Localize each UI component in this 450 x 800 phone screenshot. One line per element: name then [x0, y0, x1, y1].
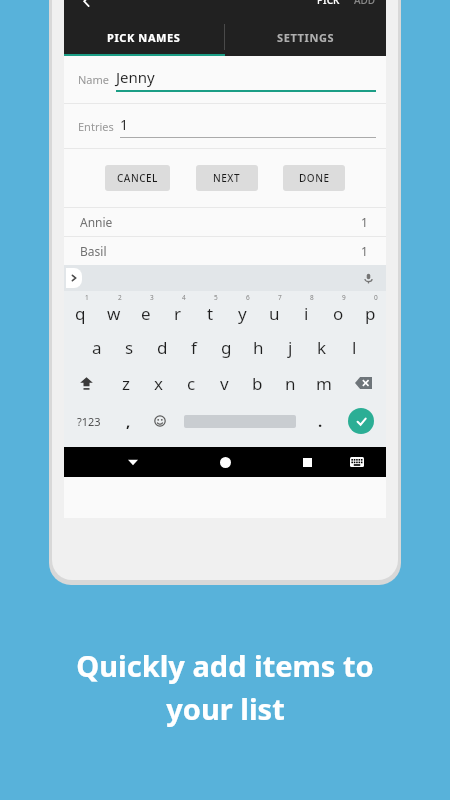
staticText: t — [207, 302, 214, 325]
button[interactable]: ADD — [354, 0, 376, 7]
staticText: PICK NAMES — [107, 30, 181, 45]
staticText: v — [220, 372, 229, 395]
button[interactable]: 5 — [194, 291, 226, 329]
staticText: x — [154, 372, 163, 395]
button[interactable]: g — [210, 329, 242, 365]
button[interactable]: n — [274, 365, 307, 401]
staticText: e — [141, 302, 151, 325]
staticText: g — [221, 336, 232, 359]
staticText: w — [107, 302, 121, 325]
button[interactable]: l — [338, 329, 370, 365]
staticText: m — [316, 372, 332, 395]
staticText: p — [365, 302, 376, 325]
button[interactable]: DONE — [283, 165, 345, 191]
staticText: 5 — [214, 293, 218, 302]
staticText: d — [157, 336, 168, 359]
button[interactable]: 8 — [290, 291, 322, 329]
staticText: CANCEL — [117, 171, 158, 185]
button[interactable]: a — [80, 329, 113, 365]
button[interactable]: Enter — [336, 401, 386, 441]
staticText: c — [187, 372, 196, 395]
button[interactable]: . — [305, 401, 336, 441]
button[interactable]: Emoji — [144, 401, 175, 441]
button[interactable]: 6 — [226, 291, 258, 329]
staticText: Entries — [78, 119, 114, 134]
button[interactable]: d — [146, 329, 178, 365]
staticText: h — [253, 336, 264, 359]
staticText: Quickly add items to — [76, 646, 374, 685]
button[interactable]: SETTINGS — [225, 18, 386, 56]
button[interactable]: Basil — [64, 237, 386, 265]
staticText: 1 — [361, 214, 368, 230]
staticText: a — [92, 336, 102, 359]
staticText: Name — [78, 72, 110, 87]
staticText: 6 — [246, 293, 250, 302]
button[interactable]: PICK — [317, 0, 340, 7]
button[interactable]: k — [306, 329, 338, 365]
button[interactable]: 2 — [97, 291, 130, 329]
staticText: b — [252, 372, 263, 395]
button[interactable]: Keyboard — [350, 457, 364, 467]
staticText: your list — [166, 689, 285, 728]
button[interactable]: v — [208, 365, 241, 401]
staticText: n — [285, 372, 296, 395]
staticText: , — [126, 411, 131, 431]
button[interactable]: 7 — [258, 291, 290, 329]
button[interactable]: f — [178, 329, 210, 365]
button[interactable]: j — [274, 329, 306, 365]
button[interactable]: ?123 — [64, 401, 113, 441]
staticText: Basil — [80, 243, 107, 259]
staticText: o — [333, 302, 344, 325]
button[interactable]: 0 — [354, 291, 386, 329]
button[interactable]: Shift — [64, 365, 109, 401]
staticText: r — [174, 302, 182, 325]
staticText: Annie — [80, 214, 113, 230]
staticText: DONE — [299, 171, 330, 185]
button[interactable]: s — [113, 329, 146, 365]
button[interactable]: Backspace — [340, 365, 386, 401]
button[interactable]: Annie — [64, 208, 386, 236]
button[interactable]: Home — [220, 457, 231, 468]
staticText: 1 — [120, 115, 129, 134]
button[interactable]: m — [307, 365, 340, 401]
button[interactable]: b — [241, 365, 274, 401]
staticText: 2 — [118, 293, 122, 302]
staticText: s — [125, 336, 134, 359]
staticText: y — [238, 302, 247, 325]
staticText: i — [304, 302, 309, 325]
button[interactable]: z — [109, 365, 142, 401]
button[interactable]: Voice input — [363, 273, 374, 284]
button[interactable]: c — [175, 365, 208, 401]
staticText: l — [352, 336, 357, 359]
button[interactable]: 4 — [162, 291, 194, 329]
staticText: 0 — [374, 293, 378, 302]
staticText: . — [318, 411, 323, 431]
button[interactable]: Space — [175, 401, 305, 441]
staticText: k — [317, 336, 327, 359]
button[interactable]: 3 — [130, 291, 162, 329]
button[interactable]: x — [142, 365, 175, 401]
staticText: z — [122, 372, 130, 395]
staticText: Jenny — [116, 67, 155, 87]
button[interactable]: CANCEL — [105, 165, 170, 191]
staticText: 1 — [85, 293, 89, 302]
button[interactable]: More suggestions — [66, 268, 82, 288]
button[interactable]: 9 — [322, 291, 354, 329]
staticText: 4 — [182, 293, 186, 302]
staticText: j — [288, 336, 293, 359]
button[interactable]: h — [242, 329, 274, 365]
staticText: f — [191, 336, 197, 359]
button[interactable]: , — [113, 401, 144, 441]
button[interactable]: PICK NAMES — [64, 18, 224, 56]
staticText: ?123 — [77, 414, 101, 429]
button[interactable]: NEXT — [196, 165, 258, 191]
staticText: u — [269, 302, 280, 325]
button[interactable]: Back — [80, 0, 94, 8]
staticText: 7 — [278, 293, 282, 302]
button[interactable]: 1 — [64, 291, 97, 329]
staticText: 9 — [342, 293, 346, 302]
staticText: 1 — [361, 243, 368, 259]
staticText: q — [75, 302, 86, 325]
button[interactable]: Back — [127, 456, 139, 468]
